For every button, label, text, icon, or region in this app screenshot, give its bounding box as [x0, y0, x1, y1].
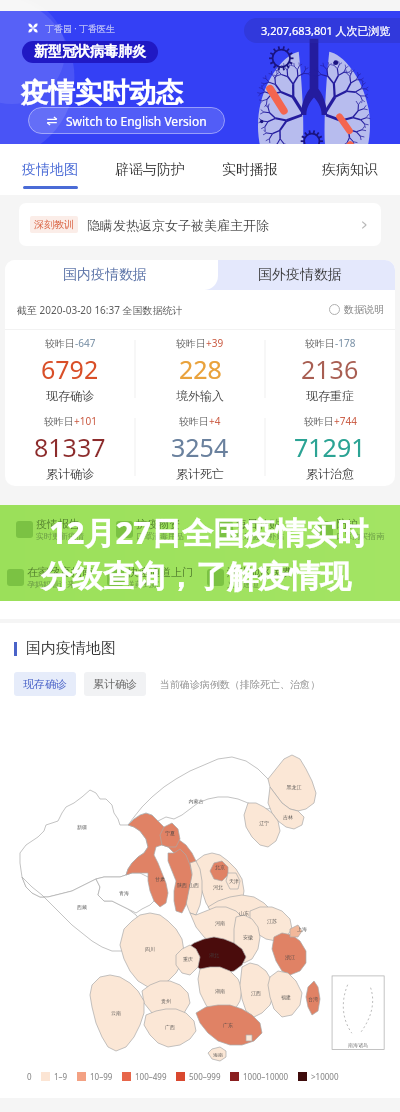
- staticText: 较昨日: [305, 337, 335, 350]
- staticText: 500–999: [189, 1071, 221, 1082]
- staticText: +101: [74, 414, 97, 428]
- staticText: 累计确诊: [46, 466, 94, 481]
- staticText: 1–9: [54, 1071, 68, 1082]
- staticText: 国内疫情数据: [63, 266, 147, 284]
- button[interactable]: 数据说明: [329, 303, 384, 316]
- staticText: 领取健康补贴: [236, 531, 284, 541]
- staticText: 隐瞒发热返京女子被美雇主开除: [87, 217, 269, 233]
- staticText: 疫情实时动态: [21, 76, 183, 110]
- staticText: 口罩购买指南: [336, 531, 384, 541]
- staticText: 送药到家: [127, 579, 159, 589]
- staticText: 累计死亡: [176, 466, 224, 481]
- staticText: 较昨日: [179, 415, 209, 428]
- staticText: 国外疫情数据: [258, 266, 342, 284]
- staticText: 12月27日全国疫情实时: [49, 511, 368, 553]
- staticText: Switch to English Version: [66, 113, 207, 129]
- staticText: 疾病知识: [322, 161, 378, 179]
- staticText: 口罩消毒用品: [136, 531, 184, 541]
- staticText: -178: [335, 336, 356, 350]
- staticText: 现存重症: [306, 388, 354, 403]
- staticText: 较昨日: [45, 337, 75, 350]
- button[interactable]: 在家孕育指南: [0, 553, 100, 601]
- staticText: 义诊通道: [227, 579, 259, 589]
- button[interactable]: 抗疫物资: [100, 505, 200, 553]
- staticText: 3,207,683,801 人次已浏览: [261, 23, 391, 38]
- staticText: 81337: [34, 430, 106, 464]
- staticText: 国内疫情地图: [26, 639, 116, 658]
- staticText: 较昨日: [304, 415, 334, 428]
- staticText: 境外输入: [176, 388, 224, 403]
- staticText: 数据说明: [344, 303, 384, 316]
- button[interactable]: 疫情地图: [0, 144, 100, 195]
- staticText: 现存确诊: [23, 677, 67, 691]
- button[interactable]: 疫情报告: [0, 505, 100, 553]
- staticText: 实时播报: [222, 161, 278, 179]
- staticText: 0: [27, 1071, 32, 1082]
- button[interactable]: 湖北地区免费: [200, 553, 300, 601]
- button[interactable]: 累计确诊: [84, 672, 146, 696]
- button[interactable]: 防护: [300, 505, 400, 553]
- staticText: 丁香园 · 丁香医生: [45, 22, 116, 34]
- staticText: 较昨日: [44, 415, 74, 428]
- button[interactable]: 国内疫情数据: [5, 260, 218, 290]
- button[interactable]: 国外疫情数据: [205, 260, 395, 290]
- button[interactable]: 深刻教训: [19, 203, 381, 246]
- staticText: 71291: [294, 430, 366, 464]
- staticText: 湖北地区免费: [227, 565, 293, 579]
- staticText: 228: [179, 352, 222, 386]
- staticText: 累计确诊: [93, 677, 137, 691]
- staticText: 孕妈妈看过来: [27, 579, 75, 589]
- staticText: 累计治愈: [306, 466, 354, 481]
- staticText: 疫情报告: [36, 517, 80, 531]
- button[interactable]: [300, 553, 400, 601]
- staticText: -647: [75, 336, 96, 350]
- staticText: 实时更新疫情: [36, 531, 84, 541]
- staticText: 深刻教训: [34, 218, 74, 231]
- button[interactable]: 每日补贴: [200, 505, 300, 553]
- staticText: 新型冠状病毒肺炎: [34, 43, 146, 61]
- button[interactable]: 实时播报: [200, 144, 300, 195]
- staticText: 截至 2020-03-20 16:37 全国数据统计: [17, 303, 183, 317]
- staticText: +39: [206, 336, 224, 350]
- staticText: +4: [209, 414, 221, 428]
- button[interactable]: Switch to English Version: [28, 107, 225, 134]
- staticText: 在家孕育指南: [27, 565, 93, 579]
- staticText: 3254: [171, 430, 229, 464]
- button[interactable]: 辟谣与防护: [100, 144, 200, 195]
- staticText: 分级查询，了解疫情现: [41, 557, 351, 596]
- staticText: 现存确诊: [46, 388, 94, 403]
- staticText: 当前确诊病例数（排除死亡、治愈）: [160, 678, 320, 691]
- staticText: 防护: [336, 517, 358, 531]
- staticText: +744: [334, 414, 357, 428]
- staticText: 每日补贴: [236, 517, 280, 531]
- staticText: 2136: [301, 352, 359, 386]
- staticText: 快速通道上门: [127, 565, 193, 579]
- staticText: 100–499: [135, 1071, 167, 1082]
- button[interactable]: 快速通道上门: [100, 553, 200, 601]
- staticText: 抗疫物资: [136, 517, 180, 531]
- staticText: 10–99: [90, 1071, 113, 1082]
- staticText: 1000–10000: [243, 1071, 289, 1082]
- button[interactable]: 现存确诊: [14, 672, 76, 696]
- staticText: >10000: [311, 1071, 339, 1082]
- staticText: 辟谣与防护: [115, 161, 185, 179]
- staticText: 6792: [41, 352, 99, 386]
- staticText: 疫情地图: [22, 161, 78, 179]
- staticText: 较昨日: [176, 337, 206, 350]
- button[interactable]: 疾病知识: [300, 144, 400, 195]
